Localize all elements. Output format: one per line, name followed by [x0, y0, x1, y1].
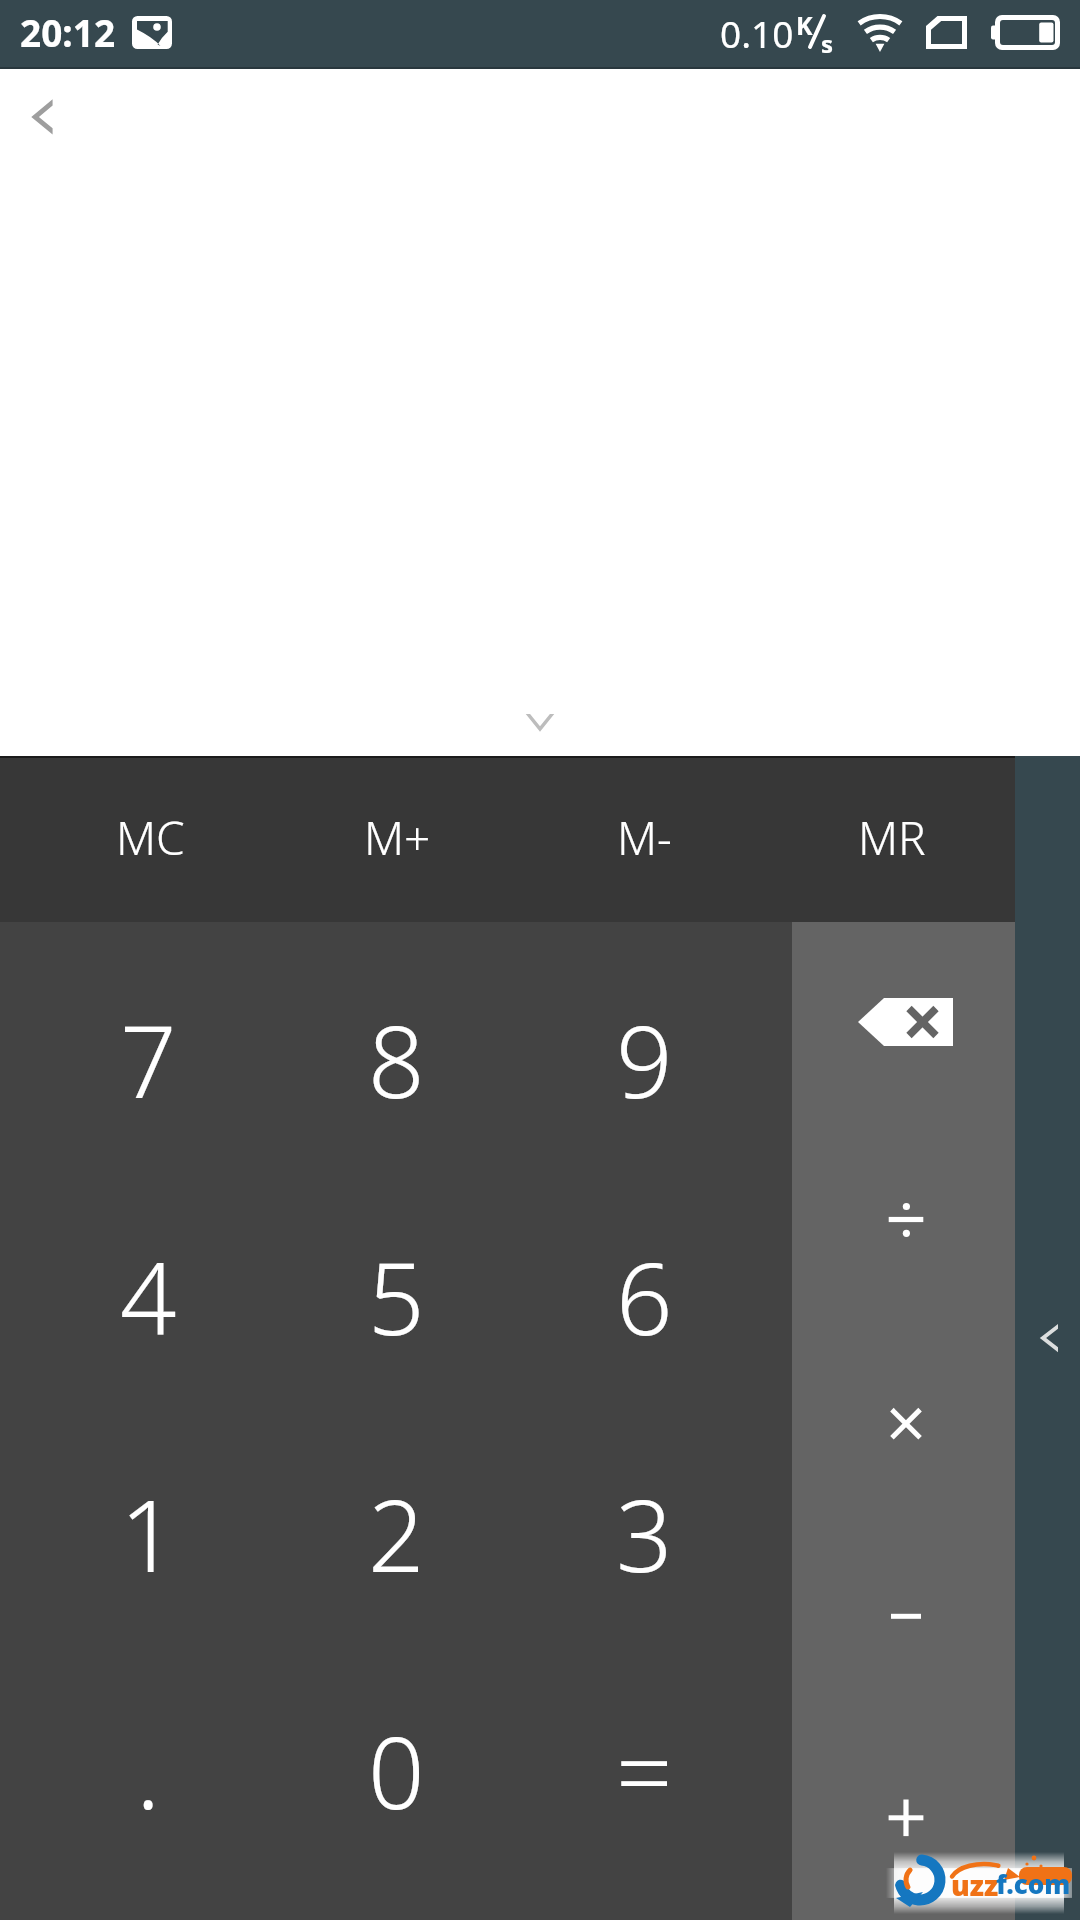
staticText: 7: [120, 992, 177, 1127]
button[interactable]: Backspace: [792, 922, 1015, 1121]
staticText: 8: [368, 992, 425, 1127]
staticText: 20:12: [20, 7, 116, 57]
staticText: MC: [116, 806, 185, 869]
staticText: M+: [364, 806, 431, 869]
button[interactable]: .: [24, 1652, 272, 1889]
staticText: f.com: [996, 1866, 1071, 1901]
staticText: .: [136, 1703, 161, 1838]
staticText: uzz: [951, 1866, 999, 1904]
staticText: 1: [120, 1466, 177, 1601]
button[interactable]: 5: [272, 1178, 520, 1415]
button[interactable]: 2: [272, 1415, 520, 1652]
staticText: 0: [368, 1703, 425, 1838]
button[interactable]: 3: [520, 1415, 768, 1652]
staticText: MR: [858, 806, 926, 869]
staticText: 9: [616, 992, 673, 1127]
button[interactable]: M-: [521, 756, 768, 922]
button[interactable]: Multiply: [792, 1320, 1015, 1520]
staticText: =: [616, 1703, 673, 1838]
staticText: 5: [368, 1229, 425, 1364]
staticText: 6: [616, 1229, 673, 1364]
button[interactable]: M+: [274, 756, 521, 922]
button[interactable]: =: [520, 1652, 768, 1889]
button[interactable]: Add: [792, 1720, 1015, 1920]
button[interactable]: 0: [272, 1652, 520, 1889]
staticText: 0.10: [720, 8, 794, 58]
button[interactable]: 6: [520, 1178, 768, 1415]
button[interactable]: Collapse keypad: [495, 686, 585, 756]
staticText: s: [821, 27, 834, 60]
button[interactable]: Back: [0, 72, 86, 162]
button[interactable]: 9: [520, 941, 768, 1178]
button[interactable]: 1: [24, 1415, 272, 1652]
staticText: M-: [617, 806, 672, 869]
button[interactable]: Show more: [1015, 1302, 1080, 1372]
staticText: 3: [616, 1466, 673, 1601]
staticText: 4: [120, 1229, 177, 1364]
staticText: 2: [368, 1466, 425, 1601]
button[interactable]: MR: [768, 756, 1015, 922]
button[interactable]: Subtract: [792, 1520, 1015, 1720]
button[interactable]: 7: [24, 941, 272, 1178]
button[interactable]: Divide: [792, 1121, 1015, 1320]
button[interactable]: MC: [26, 756, 274, 922]
staticText: K: [796, 8, 813, 42]
button[interactable]: 4: [24, 1178, 272, 1415]
button[interactable]: 8: [272, 941, 520, 1178]
